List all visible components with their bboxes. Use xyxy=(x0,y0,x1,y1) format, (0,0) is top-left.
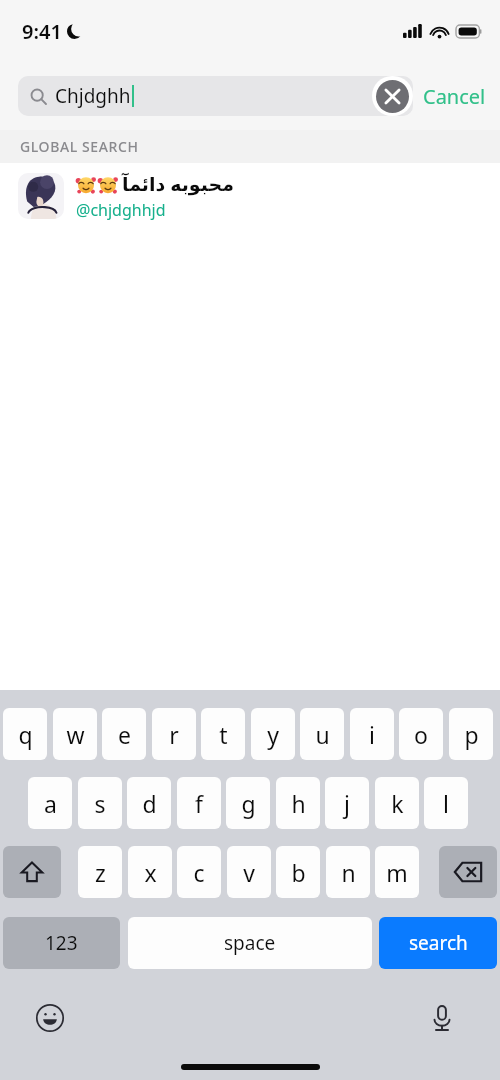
staticText: v xyxy=(243,857,255,888)
button[interactable]: z xyxy=(78,846,122,898)
staticText: w xyxy=(66,719,85,750)
staticText: r xyxy=(169,719,179,750)
staticText: g xyxy=(241,788,256,819)
button[interactable]: d xyxy=(127,777,171,829)
button[interactable]: m xyxy=(375,846,419,898)
button[interactable]: w xyxy=(53,708,97,760)
staticText: x xyxy=(144,857,157,888)
staticText: b xyxy=(291,857,306,888)
staticText: @chjdghhjd xyxy=(76,199,166,221)
button[interactable]: n xyxy=(326,846,370,898)
button[interactable]: i xyxy=(350,708,394,760)
staticText: k xyxy=(391,788,404,819)
staticText: i xyxy=(369,719,375,750)
button[interactable]: محبوبه دائمآ xyxy=(0,163,500,229)
staticText: Chjdghh xyxy=(55,83,131,109)
button[interactable]: k xyxy=(375,777,419,829)
button[interactable]: x xyxy=(128,846,172,898)
button[interactable]: c xyxy=(177,846,221,898)
button[interactable]: q xyxy=(3,708,47,760)
button[interactable]: j xyxy=(325,777,369,829)
button[interactable]: t xyxy=(201,708,245,760)
button[interactable]: Emoji keyboard xyxy=(32,1000,68,1036)
staticText: q xyxy=(18,719,33,750)
staticText: u xyxy=(315,719,330,750)
staticText: y xyxy=(267,719,279,750)
button[interactable]: b xyxy=(276,846,320,898)
staticText: s xyxy=(94,788,106,819)
staticText: h xyxy=(291,788,306,819)
button[interactable]: search xyxy=(379,917,497,969)
staticText: d xyxy=(142,788,157,819)
staticText: p xyxy=(464,719,479,750)
staticText: محبوبه دائمآ xyxy=(122,171,234,197)
button[interactable]: Clear text xyxy=(372,76,413,116)
staticText: space xyxy=(224,930,276,956)
staticText: 123 xyxy=(45,930,78,956)
staticText: search xyxy=(409,930,468,956)
button[interactable]: f xyxy=(177,777,221,829)
staticText: c xyxy=(193,857,205,888)
button[interactable]: Cancel xyxy=(423,83,486,110)
button[interactable]: Dictation xyxy=(424,1000,460,1036)
staticText: m xyxy=(386,857,408,888)
staticText: 9:41 xyxy=(22,18,62,45)
button[interactable]: y xyxy=(251,708,295,760)
button[interactable]: space xyxy=(128,917,372,969)
staticText: o xyxy=(414,719,428,750)
button[interactable]: Chjdghh xyxy=(18,76,413,116)
button[interactable]: g xyxy=(226,777,270,829)
staticText: t xyxy=(219,719,228,750)
staticText: e xyxy=(118,719,131,750)
button[interactable]: o xyxy=(399,708,443,760)
staticText: z xyxy=(95,857,106,888)
button[interactable]: 123 xyxy=(3,917,120,969)
button[interactable]: s xyxy=(78,777,122,829)
staticText: Cancel xyxy=(423,83,486,110)
button[interactable]: v xyxy=(227,846,271,898)
button[interactable]: e xyxy=(102,708,146,760)
button[interactable] xyxy=(3,846,61,898)
staticText: j xyxy=(344,788,350,819)
staticText: f xyxy=(195,788,203,819)
button[interactable]: p xyxy=(449,708,493,760)
button[interactable]: h xyxy=(276,777,320,829)
button[interactable]: r xyxy=(152,708,196,760)
staticText: l xyxy=(443,788,449,819)
staticText: n xyxy=(341,857,356,888)
staticText: GLOBAL SEARCH xyxy=(20,137,139,156)
button[interactable]: l xyxy=(424,777,468,829)
button[interactable] xyxy=(439,846,497,898)
staticText: a xyxy=(44,788,57,819)
button[interactable]: u xyxy=(300,708,344,760)
button[interactable]: a xyxy=(28,777,72,829)
